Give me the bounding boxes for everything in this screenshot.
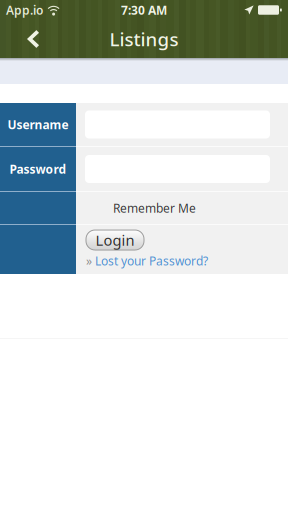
button[interactable]: » (86, 253, 208, 269)
staticText: Password (9, 161, 66, 177)
button[interactable]: Remember Me (113, 200, 196, 216)
staticText: » (86, 253, 92, 269)
button[interactable]: Login (86, 230, 144, 250)
staticText: Username (7, 116, 68, 132)
staticText: Lost your Password? (95, 253, 208, 269)
staticText: 7:30 AM (121, 2, 167, 18)
staticText: Listings (109, 27, 178, 51)
button[interactable]: Back (11, 20, 55, 58)
staticText: App.io (6, 2, 43, 18)
staticText: Remember Me (113, 200, 196, 216)
staticText: Login (95, 230, 134, 250)
